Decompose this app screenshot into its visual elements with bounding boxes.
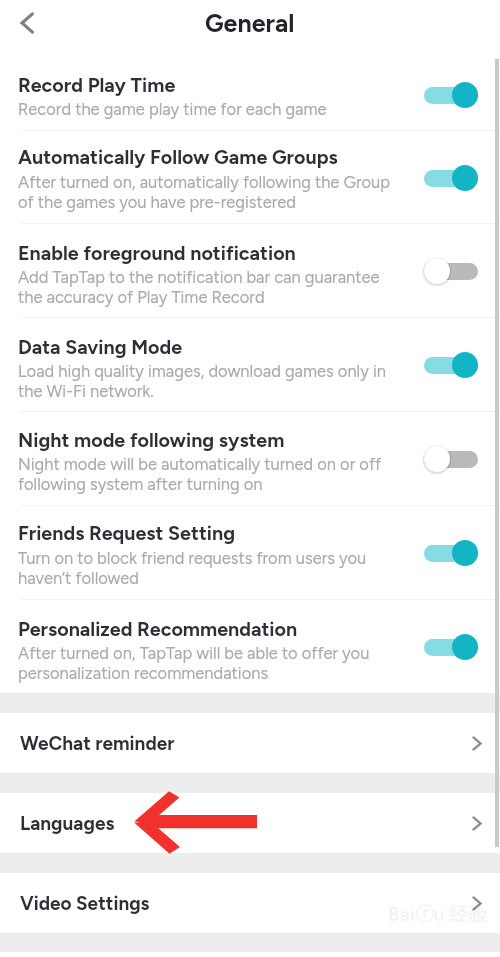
button[interactable]: Friends Request Setting (0, 506, 500, 600)
button[interactable]: Video Settings (0, 873, 500, 933)
staticText: WeChat reminder (20, 732, 175, 755)
staticText: Load high quality images, download games… (18, 361, 418, 401)
button[interactable]: Night mode following system (0, 412, 500, 506)
staticText: Personalized Recommendation (18, 619, 418, 641)
button[interactable]: Languages (0, 793, 500, 853)
button[interactable]: Back (12, 9, 40, 37)
staticText: Night mode will be automatically turned … (18, 454, 418, 494)
staticText: Record Play Time (18, 75, 418, 97)
staticText: Languages (20, 812, 115, 835)
button[interactable]: Switch on (423, 164, 479, 192)
button[interactable]: Switch on (423, 351, 479, 379)
staticText: Baiⓡu 经验 (388, 903, 488, 927)
button[interactable]: Enable foreground notification (0, 224, 500, 318)
button[interactable]: Switch off (423, 445, 479, 473)
button[interactable]: Switch off (423, 257, 479, 285)
staticText: Automatically Follow Game Groups (18, 147, 418, 169)
button[interactable]: Record Play Time (0, 59, 500, 131)
staticText: Night mode following system (18, 430, 418, 452)
staticText: Add TapTap to the notification bar can g… (18, 267, 418, 307)
staticText: After turned on, TapTap will be able to … (18, 643, 418, 683)
button[interactable]: Switch on (423, 539, 479, 567)
staticText: Friends Request Setting (18, 523, 418, 545)
staticText: Video Settings (20, 892, 150, 915)
staticText: Turn on to block friend requests from us… (18, 548, 418, 588)
staticText: Record the game play time for each game (18, 99, 418, 119)
staticText: General (205, 8, 295, 38)
button[interactable]: Switch on (423, 633, 479, 661)
button[interactable]: Automatically Follow Game Groups (0, 131, 500, 224)
staticText: After turned on, automatically following… (18, 172, 418, 212)
button[interactable]: Switch on (423, 81, 479, 109)
staticText: Enable foreground notification (18, 243, 418, 265)
staticText: Data Saving Mode (18, 337, 418, 359)
button[interactable]: WeChat reminder (0, 713, 500, 773)
button[interactable]: Data Saving Mode (0, 318, 500, 412)
button[interactable]: Personalized Recommendation (0, 600, 500, 693)
